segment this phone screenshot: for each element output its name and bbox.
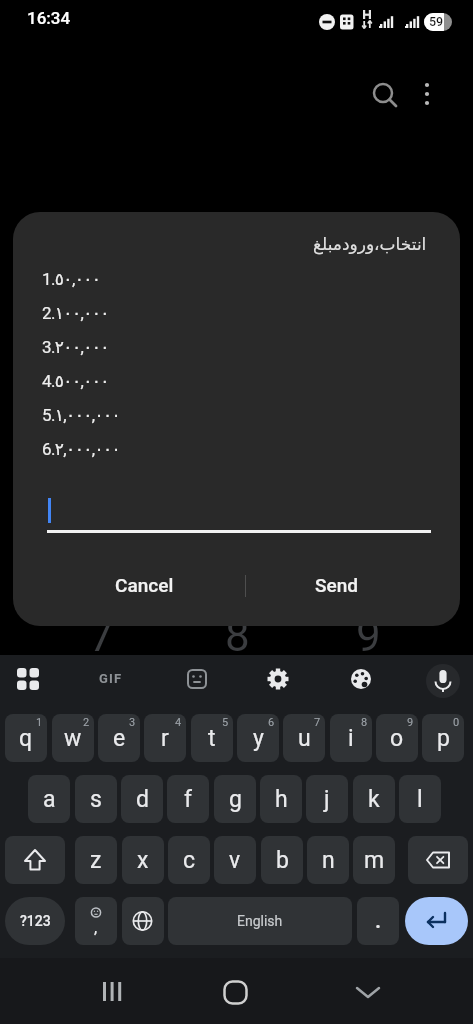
staticText: m: [364, 847, 385, 874]
staticText: f: [184, 786, 192, 813]
button[interactable]: h: [260, 775, 302, 823]
button[interactable]: a: [28, 775, 70, 823]
button[interactable]: ,: [75, 897, 117, 945]
button[interactable]: [405, 897, 468, 945]
button[interactable]: l: [399, 775, 441, 823]
staticText: j: [324, 786, 330, 813]
staticText: h: [275, 786, 288, 813]
button[interactable]: n: [307, 836, 349, 884]
staticText: l: [417, 786, 423, 813]
staticText: 7: [314, 716, 321, 729]
staticText: 1: [36, 716, 43, 729]
button[interactable]: b: [261, 836, 303, 884]
staticText: Cancel: [115, 574, 174, 596]
staticText: v: [229, 847, 241, 874]
staticText: d: [136, 786, 149, 813]
staticText: u: [298, 725, 311, 752]
button[interactable]: y: [237, 714, 279, 762]
staticText: 3: [129, 716, 136, 729]
button[interactable]: [408, 836, 468, 884]
button[interactable]: v: [214, 836, 256, 884]
button[interactable]: g: [214, 775, 256, 823]
staticText: 6.٢,٠٠٠,٠٠٠: [42, 439, 121, 459]
button[interactable]: u: [283, 714, 325, 762]
button[interactable]: .: [357, 897, 399, 945]
staticText: y: [253, 725, 264, 752]
staticText: 59: [429, 14, 444, 29]
staticText: 9: [356, 610, 381, 662]
staticText: o: [390, 725, 404, 752]
staticText: 2.١٠٠,٠٠٠: [42, 303, 109, 323]
button[interactable]: English: [168, 897, 352, 945]
staticText: ?123: [20, 913, 51, 929]
button[interactable]: q: [5, 714, 47, 762]
staticText: e: [113, 725, 126, 752]
staticText: 8: [225, 610, 250, 662]
staticText: انتخاب،ورودمبلغ: [313, 234, 427, 254]
staticText: z: [90, 847, 102, 874]
button[interactable]: x: [122, 836, 164, 884]
staticText: 0: [453, 716, 460, 729]
button[interactable]: m: [353, 836, 395, 884]
staticText: i: [348, 725, 354, 752]
button[interactable]: Cancel: [84, 564, 204, 606]
staticText: k: [368, 786, 380, 813]
staticText: 8: [361, 716, 368, 729]
button[interactable]: ?123: [5, 897, 65, 945]
staticText: 3.٢٠٠,٠٠٠: [42, 337, 109, 357]
button[interactable]: p: [422, 714, 464, 762]
button[interactable]: t: [191, 714, 233, 762]
button[interactable]: s: [75, 775, 117, 823]
staticText: t: [208, 725, 216, 752]
staticText: 16:34: [27, 8, 71, 28]
staticText: g: [229, 786, 242, 813]
staticText: Send: [315, 574, 358, 596]
staticText: .: [375, 908, 382, 934]
staticText: s: [90, 786, 102, 813]
staticText: b: [276, 847, 289, 874]
button[interactable]: k: [353, 775, 395, 823]
staticText: 5.١,٠٠٠,٠٠٠: [42, 405, 121, 425]
staticText: 9: [407, 716, 414, 729]
staticText: a: [43, 786, 56, 813]
staticText: English: [237, 913, 283, 929]
staticText: ,: [94, 918, 98, 937]
button[interactable]: z: [75, 836, 117, 884]
button[interactable]: Send: [276, 564, 396, 606]
button[interactable]: r: [144, 714, 186, 762]
staticText: GIF: [99, 671, 123, 686]
staticText: w: [64, 725, 82, 752]
button[interactable]: c: [168, 836, 210, 884]
staticText: 2: [83, 716, 90, 729]
staticText: 4: [175, 716, 182, 729]
staticText: x: [137, 847, 149, 874]
button[interactable]: o: [376, 714, 418, 762]
button[interactable]: j: [306, 775, 348, 823]
staticText: q: [19, 725, 33, 752]
staticText: 5: [222, 716, 229, 729]
staticText: 1.٥٠,٠٠٠: [42, 269, 101, 289]
staticText: 6: [268, 716, 275, 729]
staticText: r: [161, 725, 169, 752]
button[interactable]: d: [121, 775, 163, 823]
staticText: 4.٥٠٠,٠٠٠: [42, 371, 109, 391]
staticText: n: [322, 847, 335, 874]
button[interactable]: [122, 897, 164, 945]
button[interactable]: w: [52, 714, 94, 762]
staticText: c: [183, 847, 196, 874]
staticText: p: [437, 725, 450, 752]
button[interactable]: [5, 836, 65, 884]
button[interactable]: f: [167, 775, 209, 823]
staticText: 7: [89, 610, 114, 662]
button[interactable]: e: [98, 714, 140, 762]
button[interactable]: i: [330, 714, 372, 762]
